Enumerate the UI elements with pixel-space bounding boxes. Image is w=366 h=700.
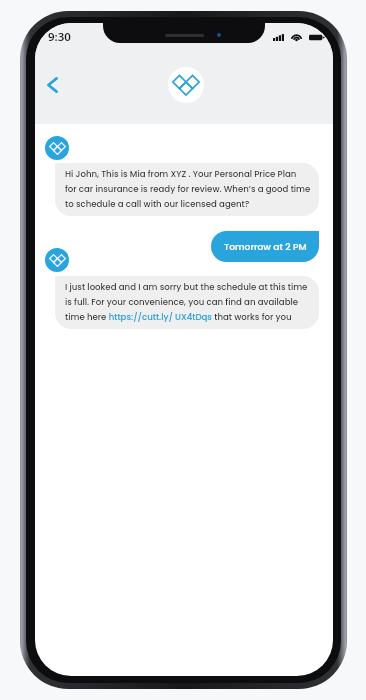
staticText: 9:30 [48,29,71,45]
button[interactable]: Back [35,68,69,102]
staticText: Hi John, This is Mia from XYZ . Your Per… [65,168,310,210]
button[interactable]: Hi John, This is Mia from XYZ . Your Per… [55,163,319,216]
button[interactable]: Company logo [168,67,204,103]
staticText: Tomorrow at 2 PM [224,240,307,253]
staticText: I just looked and I am sorry but the sch… [65,281,308,323]
button[interactable]: I just looked and I am sorry but the sch… [55,276,319,329]
button[interactable]: Tomorrow at 2 PM [211,231,319,262]
